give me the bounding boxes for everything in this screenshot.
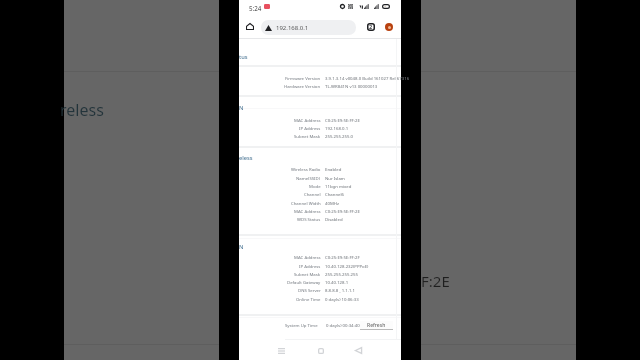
staticText: 192.168.0.1 [325, 125, 349, 131]
button[interactable]: Refresh [360, 321, 393, 330]
staticText: Subnet Mask [294, 133, 321, 139]
staticText: C0:25:E9:5E:FF:2E [325, 117, 360, 123]
staticText: Channel Width [291, 200, 321, 206]
staticText: Firmware Version [285, 75, 321, 81]
staticText: Wireless Radio [291, 166, 321, 172]
button[interactable]: Home [241, 18, 258, 35]
staticText: MAC Address [294, 208, 321, 214]
staticText: C0:25:E9:5E:FF:2F [325, 254, 360, 260]
staticText: Nur Islam [325, 175, 345, 181]
staticText: 255.255.255.255 [325, 271, 358, 277]
staticText: 10.40.128.1 [325, 279, 349, 285]
staticText: DNS Server [298, 287, 321, 293]
staticText: 11bgn mixed [325, 183, 352, 189]
button[interactable]: Home [312, 342, 329, 359]
staticText: 192.168.0.1 [276, 24, 309, 32]
staticText: 10.40.128.232(PPPoE) [325, 263, 369, 269]
staticText: IP Address [299, 125, 321, 131]
staticText: WDS Status [297, 216, 321, 222]
staticText: 5:24 [249, 4, 262, 12]
button[interactable]: Account [380, 18, 398, 36]
staticText: Channel6 [325, 191, 345, 197]
staticText: N [239, 104, 244, 112]
button[interactable]: Recent apps [273, 342, 290, 359]
staticText: 0 day(s) 10:06:33 [325, 296, 359, 302]
staticText: tus [239, 53, 248, 61]
staticText: 40MHz [325, 200, 340, 206]
button[interactable]: 192.168.0.1 [261, 20, 356, 35]
staticText: TL-WR841N v13 00000013 [325, 83, 378, 89]
staticText: Mode [309, 183, 321, 189]
staticText: Name(SSID) [296, 175, 321, 181]
button[interactable]: Tabs [362, 18, 380, 36]
staticText: Hardware Version [284, 83, 321, 89]
staticText: Channel [304, 191, 321, 197]
staticText: eless [239, 154, 253, 162]
staticText: System Up Time [285, 322, 318, 328]
staticText: 0 day(s) 00:34:40 [326, 322, 360, 328]
staticText: 3.9.1.3.14 v0048.0 Build 161027 Rel.6731… [325, 75, 410, 81]
staticText: IP Address [299, 263, 321, 269]
staticText: Subnet Mask [294, 271, 321, 277]
staticText: Default Gateway [287, 279, 321, 285]
staticText: 2 [369, 23, 373, 31]
staticText: MAC Address [294, 254, 321, 260]
staticText: Online Time [296, 296, 321, 302]
staticText: Enabled [325, 166, 342, 172]
staticText: C0:25:E9:5E:FF:2E [325, 208, 360, 214]
staticText: 255.255.255.0 [325, 133, 354, 139]
staticText: Disabled [325, 216, 343, 222]
button[interactable]: Back [350, 342, 367, 359]
staticText: MAC Address [294, 117, 321, 123]
staticText: N [239, 243, 244, 251]
staticText: reless [60, 99, 104, 121]
staticText: F:2E [421, 271, 450, 291]
staticText: 8.8.8.8 , 1.1.1.1 [325, 287, 355, 293]
staticText: Refresh [367, 322, 386, 329]
